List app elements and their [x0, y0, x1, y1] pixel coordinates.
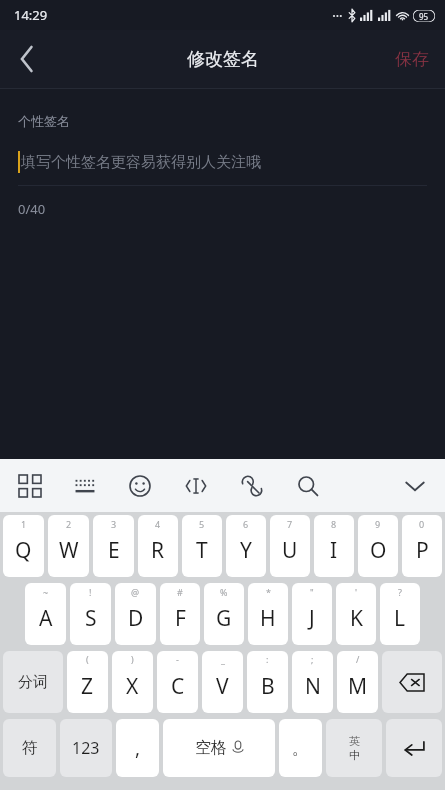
staticText: E [108, 536, 120, 565]
staticText: I [330, 536, 338, 565]
button[interactable]: 6 [226, 515, 266, 577]
button[interactable]: ? [380, 583, 420, 645]
button[interactable]: 光标 [175, 465, 217, 507]
staticText: O [370, 536, 387, 565]
button[interactable]: : [247, 651, 288, 713]
button[interactable]: 空格 [163, 719, 275, 777]
button[interactable]: * [248, 583, 288, 645]
staticText: % [220, 586, 228, 598]
staticText: 3 [111, 518, 117, 530]
button[interactable]: 9 [358, 515, 398, 577]
button[interactable]: ~ [25, 583, 66, 645]
staticText: ) [131, 653, 134, 665]
staticText: 14:29 [14, 6, 48, 24]
button[interactable]: 2 [48, 515, 89, 577]
staticText: 5 [199, 518, 205, 530]
button[interactable]: 3 [93, 515, 134, 577]
staticText: F [175, 604, 186, 633]
staticText: - [176, 653, 179, 665]
staticText: U [282, 536, 298, 565]
staticText: _ [221, 653, 225, 665]
staticText: V [216, 672, 229, 701]
staticText: 分词 [18, 673, 48, 692]
staticText: T [196, 536, 208, 565]
button[interactable]: # [160, 583, 200, 645]
staticText: 修改签名 [187, 48, 259, 71]
button[interactable]: 8 [314, 515, 354, 577]
button[interactable]: _ [202, 651, 243, 713]
staticText: 空格 [195, 738, 227, 758]
staticText: Q [15, 536, 32, 565]
button[interactable]: 。 [279, 719, 322, 777]
staticText: 符 [22, 738, 38, 758]
button[interactable]: @ [115, 583, 156, 645]
button[interactable]: - [157, 651, 198, 713]
staticText: D [128, 604, 144, 633]
staticText: ( [86, 653, 89, 665]
staticText: 9 [375, 518, 381, 530]
button[interactable]: 表情 [119, 465, 161, 507]
button[interactable]: 收起键盘 [393, 464, 437, 508]
staticText: * [266, 586, 271, 598]
button[interactable]: 中英文切换 [326, 719, 382, 777]
staticText: P [416, 536, 429, 565]
staticText: N [305, 672, 321, 701]
staticText: 95 [419, 11, 429, 22]
staticText: 2 [66, 518, 72, 530]
button[interactable]: 退格 [382, 651, 442, 713]
button[interactable]: ! [70, 583, 111, 645]
button[interactable]: 返回 [0, 30, 54, 88]
staticText: K [350, 604, 363, 633]
staticText: 7 [287, 518, 293, 530]
button[interactable]: 剪贴板 [231, 465, 273, 507]
button[interactable]: 5 [182, 515, 222, 577]
staticText: W [59, 536, 79, 565]
button[interactable]: / [337, 651, 378, 713]
staticText: 4 [155, 518, 161, 530]
staticText: , [135, 735, 141, 761]
staticText: 填写个性签名更容易获得别人关注哦 [21, 153, 261, 172]
staticText: ; [311, 653, 314, 665]
staticText: / [356, 653, 360, 665]
button[interactable]: 面板 [9, 465, 51, 507]
button[interactable]: 键盘 [64, 465, 106, 507]
staticText: 个性签名 [18, 113, 70, 129]
button[interactable]: ) [112, 651, 153, 713]
button[interactable]: 符 [3, 719, 56, 777]
staticText: M [348, 672, 368, 701]
staticText: Y [240, 536, 252, 565]
button[interactable]: 保存 [379, 30, 445, 88]
button[interactable]: 回车 [386, 719, 442, 777]
button[interactable]: , [116, 719, 159, 777]
staticText: 保存 [395, 49, 429, 70]
button[interactable]: % [204, 583, 244, 645]
staticText: 123 [72, 737, 100, 759]
staticText: B [261, 672, 275, 701]
staticText: ~ [43, 586, 49, 598]
staticText: " [310, 586, 314, 598]
staticText: 。 [292, 738, 309, 759]
staticText: 8 [331, 518, 337, 530]
button[interactable]: 7 [270, 515, 310, 577]
staticText: X [126, 672, 139, 701]
staticText: J [309, 604, 315, 633]
staticText: G [216, 604, 232, 633]
button[interactable]: " [292, 583, 332, 645]
staticText: 0/40 [18, 200, 46, 218]
button[interactable]: 4 [138, 515, 178, 577]
staticText: ' [355, 586, 358, 598]
button[interactable]: 1 [3, 515, 44, 577]
button[interactable]: 123 [60, 719, 112, 777]
staticText: 1 [21, 518, 27, 530]
staticText: : [266, 653, 269, 665]
button[interactable]: ; [292, 651, 333, 713]
staticText: 0 [419, 518, 425, 530]
staticText: @ [131, 586, 140, 598]
button[interactable]: 搜索 [287, 465, 329, 507]
button[interactable]: 0 [402, 515, 442, 577]
button[interactable]: ' [336, 583, 376, 645]
staticText: 6 [243, 518, 249, 530]
staticText: H [260, 604, 276, 633]
button[interactable]: ( [67, 651, 108, 713]
button[interactable]: 分词 [3, 651, 63, 713]
